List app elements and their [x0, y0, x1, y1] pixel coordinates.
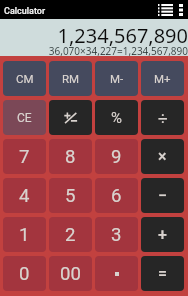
button[interactable]: ÷ — [141, 100, 184, 135]
staticText: 4 — [19, 185, 30, 207]
button[interactable]: M- — [95, 61, 138, 96]
button[interactable]: 4 — [3, 178, 46, 213]
staticText: CE — [17, 111, 32, 125]
staticText: 00 — [60, 263, 81, 285]
staticText: M- — [110, 72, 124, 85]
button[interactable]: = — [141, 256, 184, 291]
staticText: Calculator — [4, 6, 158, 17]
staticText: 8 — [65, 146, 76, 168]
staticText: % — [111, 109, 122, 127]
button[interactable]: 5 — [49, 178, 92, 213]
button[interactable]: Decimal point — [95, 256, 138, 291]
staticText: CM — [16, 72, 34, 85]
button[interactable]: Plus minus — [49, 100, 92, 135]
staticText: 36,070×34,227=1,234,567,890 — [48, 44, 188, 58]
button[interactable]: − — [141, 178, 184, 213]
staticText: 0 — [19, 263, 30, 285]
button[interactable]: % — [95, 100, 138, 135]
staticText: 1 — [19, 224, 30, 246]
button[interactable]: RM — [49, 61, 92, 96]
button[interactable]: 7 — [3, 139, 46, 174]
staticText: 7 — [19, 146, 30, 168]
staticText: 6 — [111, 185, 122, 207]
button[interactable]: 3 — [95, 217, 138, 252]
button[interactable]: 9 — [95, 139, 138, 174]
staticText: − — [158, 186, 168, 205]
staticText: 1,234,567,890 — [57, 22, 188, 49]
staticText: ÷ — [158, 108, 168, 128]
button[interactable]: 6 — [95, 178, 138, 213]
staticText: 2 — [65, 224, 76, 246]
button[interactable]: CE — [3, 100, 46, 135]
staticText: + — [158, 225, 167, 244]
staticText: 9 — [111, 146, 122, 168]
button[interactable]: 00 — [49, 256, 92, 291]
staticText: × — [158, 147, 167, 166]
staticText: 5 — [65, 185, 76, 207]
button[interactable]: CM — [3, 61, 46, 96]
staticText: RM — [62, 72, 80, 85]
button[interactable]: 1 — [3, 217, 46, 252]
button[interactable]: More options — [173, 0, 188, 19]
staticText: M+ — [154, 72, 171, 85]
button[interactable]: 8 — [49, 139, 92, 174]
button[interactable]: M+ — [141, 61, 184, 96]
button[interactable]: × — [141, 139, 184, 174]
button[interactable]: History — [158, 0, 173, 19]
button[interactable]: 2 — [49, 217, 92, 252]
button[interactable]: 0 — [3, 256, 46, 291]
button[interactable]: + — [141, 217, 184, 252]
staticText: 3 — [111, 224, 122, 246]
staticText: = — [158, 264, 167, 283]
